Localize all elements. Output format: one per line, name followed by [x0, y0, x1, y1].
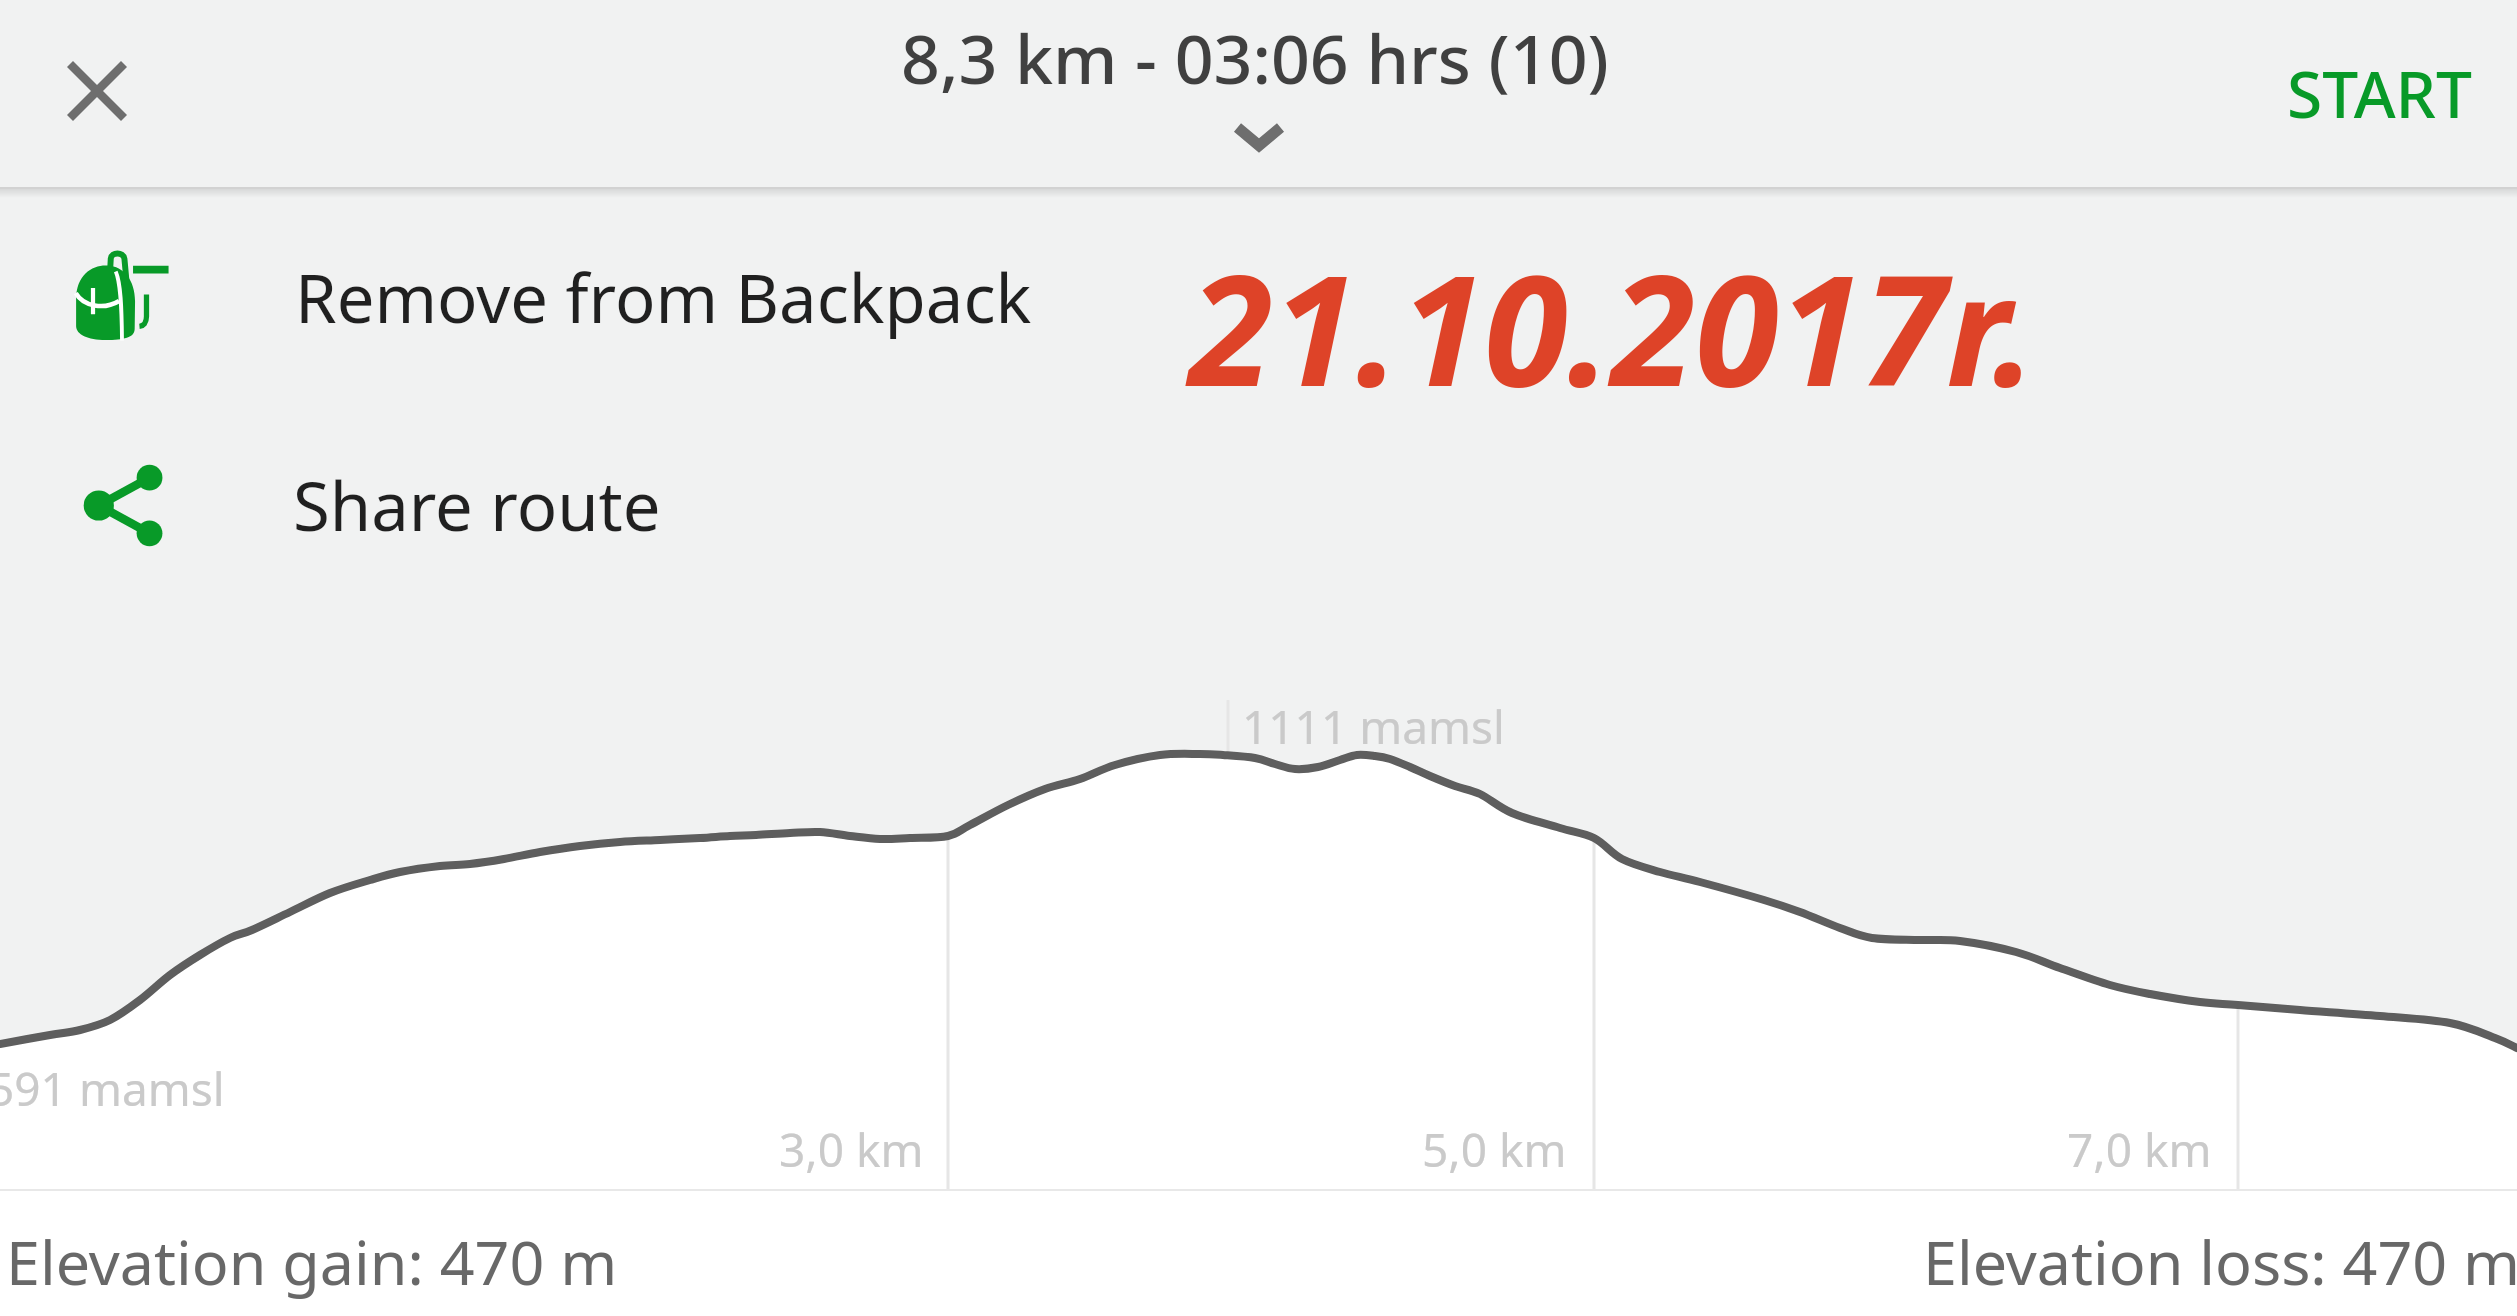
staticText: Share route	[293, 459, 661, 550]
staticText: START	[2287, 50, 2473, 137]
staticText: 591 mamsl	[0, 1057, 225, 1120]
button[interactable]: Share route	[0, 420, 2517, 592]
staticText: Elevation loss: 470 m	[1923, 1220, 2517, 1303]
button[interactable]: Expand details	[1204, 100, 1314, 172]
staticText: Elevation gain: 470 m	[6, 1220, 618, 1303]
staticText: 5,0 km	[1422, 1118, 1567, 1181]
button[interactable]: Close	[28, 22, 166, 160]
staticText: 21.10.2017r.	[1189, 224, 2037, 431]
button[interactable]: Remove from Backpack	[0, 208, 2517, 380]
button[interactable]: START	[2254, 28, 2506, 159]
staticText: 8,3 km - 03:06 hrs (10)	[901, 11, 1609, 104]
staticText: Remove from Backpack	[295, 251, 1032, 342]
staticText: 1111 mamsl	[1242, 695, 1505, 758]
staticText: 3,0 km	[779, 1118, 924, 1181]
staticText: 7,0 km	[2067, 1118, 2212, 1181]
